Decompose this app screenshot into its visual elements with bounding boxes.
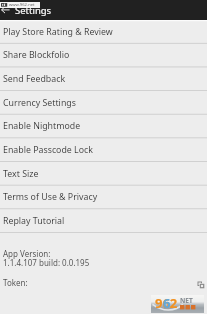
staticText: Text Size <box>3 168 39 180</box>
staticText: Share Blockfolio <box>3 49 70 61</box>
button[interactable]: Enable Nightmode <box>0 114 207 138</box>
staticText: Currency Settings <box>3 97 76 109</box>
staticText: Play Store Rating & Review <box>3 26 113 38</box>
button[interactable]: Enable Passcode Lock <box>0 138 207 162</box>
staticText: 6 <box>163 294 171 312</box>
staticText: Settings <box>15 4 52 17</box>
button[interactable]: Share Blockfolio <box>0 43 207 67</box>
button[interactable]: Text Size <box>0 162 207 186</box>
button[interactable]: Terms of Use & Privacy <box>0 185 207 209</box>
button[interactable]: Play Store Rating & Review <box>0 20 207 43</box>
staticText: Send Feedback <box>3 73 66 85</box>
staticText: Enable Nightmode <box>3 120 81 132</box>
staticText: Replay Tutorial <box>3 215 65 227</box>
staticText: 1.1.4.107 build: 0.0.195 <box>3 257 90 268</box>
staticText: NET <box>180 296 193 305</box>
staticText: App Version: <box>3 248 51 259</box>
button[interactable]: Copy token <box>196 280 206 290</box>
staticText: www.962.net <box>9 2 35 8</box>
button[interactable]: Send Feedback <box>0 67 207 91</box>
button[interactable]: Replay Tutorial <box>0 209 207 233</box>
staticText: Token: <box>3 277 28 288</box>
button[interactable]: Back <box>0 3 14 17</box>
staticText: Terms of Use & Privacy <box>3 191 98 203</box>
staticText: Enable Passcode Lock <box>3 144 93 156</box>
staticText: 962 <box>155 294 178 312</box>
button[interactable]: Currency Settings <box>0 91 207 115</box>
